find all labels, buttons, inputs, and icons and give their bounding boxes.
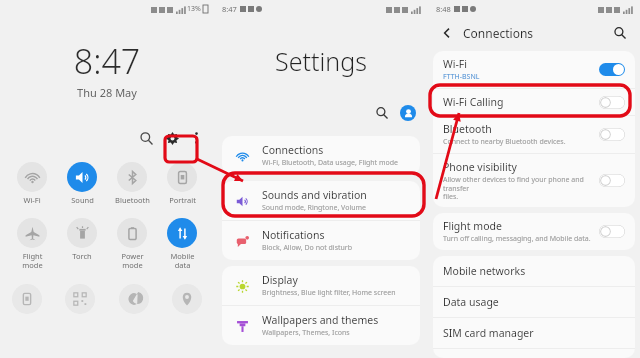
staticText: Turn off calling, messaging, and Mobile … [443, 234, 591, 244]
staticText: Thu 28 May [0, 85, 214, 100]
staticText: Sounds and vibration [262, 188, 367, 202]
staticText: Brightness, Blue light filter, Home scre… [262, 288, 396, 298]
button[interactable]: Notifications [222, 221, 420, 260]
button[interactable]: Flight mode toggle [599, 225, 625, 238]
staticText: Sound [71, 195, 94, 205]
staticText: SIM card manager [443, 326, 534, 340]
staticText: Connect to nearby Bluetooth devices. [443, 137, 566, 147]
staticText: FTTH-BSNL [443, 72, 480, 82]
button[interactable]: Wi-Fi Calling [433, 89, 635, 115]
button[interactable]: Wi-Fi [10, 162, 54, 205]
staticText: Wi-Fi [443, 57, 468, 71]
button[interactable]: Bluetooth toggle [599, 128, 625, 141]
button[interactable]: More options [186, 128, 206, 148]
staticText: Portrait [169, 195, 196, 205]
button[interactable]: Torch [60, 218, 104, 261]
staticText: Wallpapers, Themes, Icons [262, 328, 350, 338]
button[interactable]: Portrait2 [12, 284, 42, 314]
staticText: 8:47 [222, 4, 237, 14]
button[interactable]: Sounds and vibration [222, 181, 420, 220]
staticText: Phone visibility [443, 160, 517, 174]
staticText: Notifications [262, 228, 325, 242]
button[interactable]: Phone visibility [433, 154, 635, 207]
button[interactable]: Flight mode [433, 213, 635, 250]
button[interactable]: Account [400, 105, 416, 121]
button[interactable]: QR code [65, 284, 95, 314]
staticText: Wi-Fi [23, 195, 41, 205]
staticText: Mobile data [170, 251, 195, 270]
button[interactable]: Back [438, 24, 456, 42]
staticText: Data usage [443, 295, 499, 309]
staticText: Wi-Fi Calling [443, 95, 504, 109]
staticText: Sound mode, Ringtone, Volume [262, 203, 367, 213]
button[interactable]: Location [172, 284, 202, 314]
button[interactable]: Power mode [110, 218, 154, 270]
button[interactable]: Search [134, 126, 158, 150]
staticText: Block, Allow, Do not disturb [262, 243, 353, 253]
staticText: Bluetooth [115, 195, 150, 205]
button[interactable]: Search settings [371, 102, 393, 124]
staticText: Wi-Fi, Bluetooth, Data usage, Flight mod… [262, 158, 399, 168]
button[interactable]: SIM card manager [433, 318, 635, 348]
button[interactable]: Search [610, 23, 630, 43]
button[interactable]: Sound [60, 162, 104, 205]
staticText: Mobile networks [443, 264, 526, 278]
button[interactable]: Flight mode [10, 218, 54, 270]
staticText: Bluetooth [443, 122, 492, 136]
staticText: Flight mode [22, 251, 43, 270]
button[interactable]: Wi-Fi [433, 51, 635, 88]
staticText: Display [262, 273, 298, 287]
button[interactable]: Wi-Fi Calling toggle [599, 96, 625, 109]
button[interactable]: Do not disturb [119, 284, 149, 314]
button[interactable]: Settings [158, 124, 186, 152]
staticText: Connections [463, 25, 534, 41]
button[interactable]: Bluetooth [110, 162, 154, 205]
staticText: 8:48 [436, 4, 451, 14]
button[interactable]: Wallpapers and themes [222, 306, 420, 345]
button[interactable]: Wi-Fi toggle [599, 63, 625, 76]
staticText: Power mode [121, 251, 144, 270]
staticText: 8:47 [0, 38, 214, 84]
staticText: Allow other devices to find your phone a… [443, 175, 591, 201]
staticText: 13% [187, 4, 201, 14]
staticText: Settings [214, 44, 428, 78]
button[interactable]: Data usage [433, 287, 635, 317]
button[interactable]: Portrait [160, 162, 204, 205]
button[interactable]: Display [222, 266, 420, 305]
button[interactable]: Bluetooth [433, 116, 635, 153]
staticText: Wallpapers and themes [262, 313, 379, 327]
button[interactable]: Phone visibility toggle [599, 174, 625, 187]
staticText: Flight mode [443, 219, 502, 233]
button[interactable]: Mobile data [160, 218, 204, 270]
button[interactable]: Connections [222, 136, 420, 175]
button[interactable]: Mobile networks [433, 256, 635, 286]
staticText: Connections [262, 143, 324, 157]
staticText: Torch [72, 251, 92, 261]
